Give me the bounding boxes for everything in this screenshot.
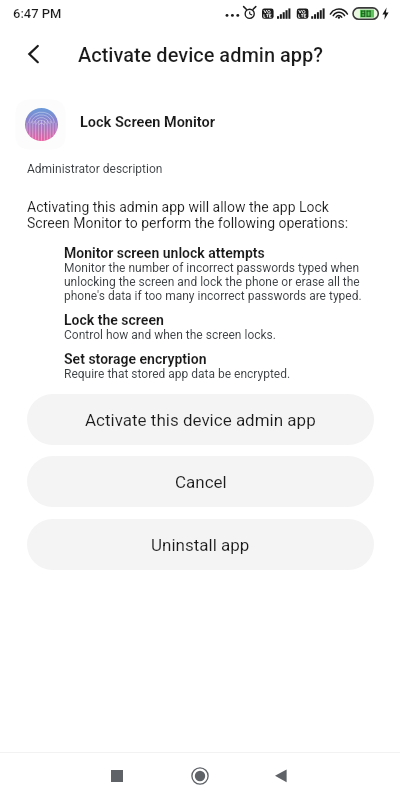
- staticText: Activate this device admin app: [85, 410, 316, 430]
- staticText: Monitor the number of incorrect password…: [64, 261, 365, 303]
- staticText: Require that stored app data be encrypte…: [64, 367, 291, 381]
- staticText: Set storage encryption: [64, 351, 207, 367]
- staticText: Activate device admin app?: [78, 43, 324, 66]
- button[interactable]: Back: [9, 30, 57, 78]
- button[interactable]: Back: [258, 752, 306, 800]
- staticText: Activating this admin app will allow the…: [27, 199, 352, 231]
- button[interactable]: Recents: [93, 752, 141, 800]
- staticText: Uninstall app: [151, 535, 250, 555]
- staticText: Lock Screen Monitor: [80, 114, 216, 131]
- button[interactable]: Cancel: [27, 456, 374, 507]
- staticText: Lock the screen: [64, 312, 164, 328]
- button[interactable]: Uninstall app: [27, 519, 374, 570]
- staticText: Control how and when the screen locks.: [64, 328, 276, 342]
- staticText: Administrator description: [27, 162, 163, 176]
- staticText: 6:47 PM: [13, 6, 62, 21]
- staticText: Monitor screen unlock attempts: [64, 245, 265, 261]
- staticText: Cancel: [175, 472, 227, 492]
- button[interactable]: Activate this device admin app: [27, 394, 374, 445]
- button[interactable]: Home: [176, 752, 224, 800]
